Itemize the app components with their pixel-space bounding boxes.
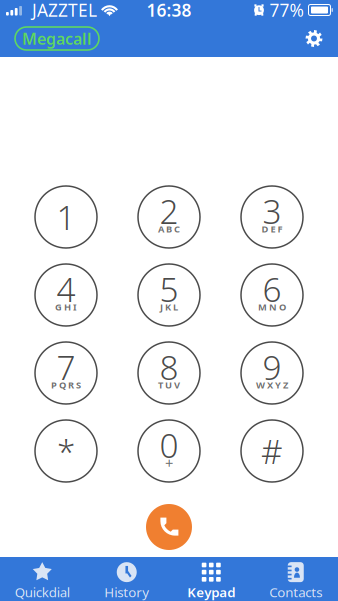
button[interactable]: Megacall <box>15 27 99 50</box>
staticText: M N O <box>258 301 286 313</box>
staticText: P Q R S <box>51 379 81 391</box>
button[interactable]: Call <box>146 504 192 550</box>
staticText: W X Y Z <box>256 379 288 391</box>
button[interactable]: 5 <box>138 264 200 326</box>
staticText: Megacall <box>22 28 92 49</box>
staticText: 4 <box>56 267 75 311</box>
button[interactable]: 9 <box>241 342 303 404</box>
staticText: 77% <box>264 0 308 21</box>
staticText: 0 <box>159 423 178 467</box>
button[interactable]: 3 <box>241 186 303 248</box>
staticText: # <box>261 429 283 473</box>
button[interactable]: 4 <box>35 264 97 326</box>
staticText: 9 <box>262 345 281 389</box>
staticText: History <box>104 583 149 601</box>
staticText: 1 <box>56 195 75 239</box>
button[interactable]: History <box>84 554 169 601</box>
staticText: Keypad <box>187 583 235 601</box>
staticText: 3 <box>262 189 281 233</box>
button[interactable]: 1 <box>35 186 97 248</box>
staticText: 16:38 <box>146 0 191 21</box>
staticText: Quickdial <box>15 583 70 601</box>
staticText: D E F <box>261 223 282 235</box>
staticText: Contacts <box>269 583 322 601</box>
staticText: JAZZTEL <box>22 0 102 21</box>
button[interactable]: 7 <box>35 342 97 404</box>
button[interactable]: 2 <box>138 186 200 248</box>
button[interactable]: Settings <box>299 23 329 53</box>
button[interactable]: * <box>35 420 97 482</box>
staticText: J K L <box>160 301 178 313</box>
staticText: T U V <box>158 379 180 391</box>
staticText: + <box>165 453 173 473</box>
staticText: * <box>57 429 75 473</box>
button[interactable]: 0 <box>138 420 200 482</box>
button[interactable]: 6 <box>241 264 303 326</box>
staticText: G H I <box>55 301 77 313</box>
button[interactable]: # <box>241 420 303 482</box>
button[interactable]: Quickdial <box>0 554 84 601</box>
button[interactable]: Keypad <box>169 554 253 601</box>
staticText: 5 <box>159 267 178 311</box>
staticText: A B C <box>158 223 180 235</box>
staticText: 8 <box>159 345 178 389</box>
staticText: 6 <box>262 267 281 311</box>
staticText: 7 <box>56 345 75 389</box>
staticText: 2 <box>159 189 178 233</box>
button[interactable]: 8 <box>138 342 200 404</box>
button[interactable]: Contacts <box>253 554 338 601</box>
